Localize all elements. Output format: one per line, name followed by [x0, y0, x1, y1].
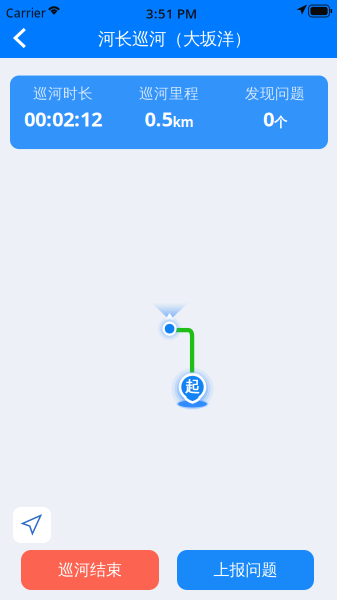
staticText: 上报问题	[213, 560, 277, 580]
staticText: 0	[263, 105, 274, 132]
button[interactable]: 返回	[0, 20, 39, 58]
button[interactable]: 上报问题	[177, 550, 314, 590]
button[interactable]: 定位	[13, 507, 51, 543]
button[interactable]: 巡河结束	[21, 550, 159, 590]
staticText: 发现问题	[245, 84, 305, 102]
staticText: 0.5	[144, 105, 172, 132]
staticText: 河长巡河（大坂洋）	[98, 28, 251, 50]
staticText: 00:02:12	[24, 105, 102, 132]
staticText: 3:51 PM	[146, 4, 197, 22]
staticText: 巡河结束	[58, 560, 122, 580]
staticText: 巡河时长	[33, 84, 93, 102]
staticText: 巡河里程	[139, 84, 199, 102]
staticText: km	[172, 113, 193, 131]
staticText: 起	[185, 377, 200, 395]
staticText: 个	[274, 114, 287, 131]
staticText: Carrier	[6, 5, 46, 21]
